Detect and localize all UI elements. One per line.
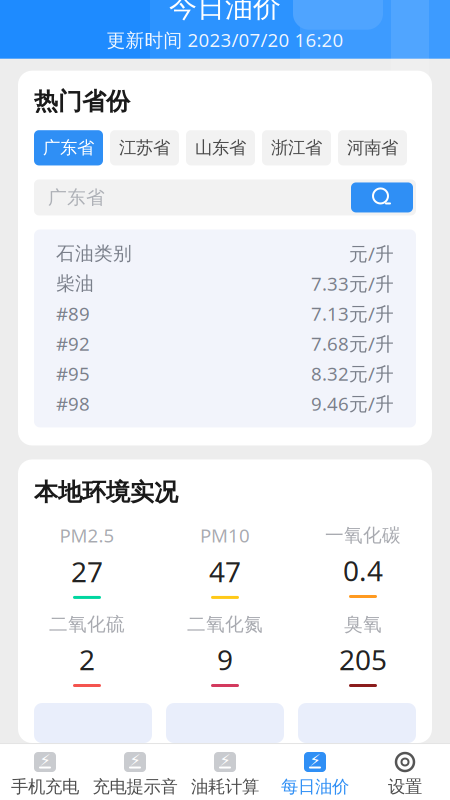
staticText: #89 xyxy=(56,301,90,326)
staticText: 8.32元/升 xyxy=(311,361,394,386)
button[interactable]: 河南省 xyxy=(338,130,407,165)
button[interactable]: 浙江省 xyxy=(262,130,331,165)
button[interactable]: 江苏省 xyxy=(110,130,179,165)
staticText: 9 xyxy=(217,641,233,678)
button[interactable]: 搜索 xyxy=(351,182,413,212)
staticText: 臭氧 xyxy=(344,613,382,636)
staticText: 47 xyxy=(209,553,241,590)
staticText: ⚡︎ xyxy=(129,751,140,770)
staticText: 205 xyxy=(339,641,387,678)
staticText: 山东省 xyxy=(195,137,246,158)
staticText: 河南省 xyxy=(347,137,398,158)
staticText: 设置 xyxy=(388,776,422,797)
staticText: #92 xyxy=(56,331,90,356)
button[interactable]: ⚡︎ xyxy=(90,752,180,797)
staticText: 7.68元/升 xyxy=(311,331,394,356)
staticText: 手机充电 xyxy=(11,776,79,797)
staticText: 2 xyxy=(79,641,95,678)
staticText: 本地环境实况 xyxy=(34,477,178,507)
staticText: ⚡︎ xyxy=(39,751,50,770)
button[interactable]: 山东省 xyxy=(186,130,255,165)
staticText: 石油类别 xyxy=(56,242,132,265)
staticText: ⚡︎ xyxy=(219,751,230,770)
staticText: #95 xyxy=(56,361,90,386)
staticText: 二氧化硫 xyxy=(49,613,125,636)
staticText: 元/升 xyxy=(349,241,394,266)
button[interactable]: 设置 xyxy=(360,752,450,797)
staticText: 油耗计算 xyxy=(191,776,259,797)
staticText: 每日油价 xyxy=(281,776,349,797)
staticText: 热门省份 xyxy=(34,87,130,116)
staticText: 今日油价 xyxy=(169,0,281,24)
staticText: 27 xyxy=(71,553,103,590)
button[interactable]: ⚡︎ xyxy=(0,752,90,797)
staticText: PM10 xyxy=(200,523,250,548)
staticText: 浙江省 xyxy=(271,137,322,158)
staticText: #98 xyxy=(56,391,90,416)
staticText: 一氧化碳 xyxy=(325,524,401,547)
staticText: 7.33元/升 xyxy=(311,271,394,296)
button[interactable]: ⚡︎ xyxy=(270,752,360,797)
staticText: 7.13元/升 xyxy=(311,301,394,326)
staticText: 0.4 xyxy=(343,552,383,589)
staticText: 江苏省 xyxy=(119,137,170,158)
staticText: 广东省 xyxy=(48,186,105,209)
staticText: 充电提示音 xyxy=(92,776,177,797)
staticText: 更新时间 2023/07/20 16:20 xyxy=(106,27,343,52)
staticText: 柴油 xyxy=(56,272,94,295)
staticText: 广东省 xyxy=(43,137,94,158)
staticText: ⚡︎ xyxy=(309,751,320,770)
button[interactable]: ⚡︎ xyxy=(180,752,270,797)
button[interactable]: 广东省 xyxy=(34,130,103,165)
staticText: 二氧化氮 xyxy=(187,613,263,636)
staticText: PM2.5 xyxy=(59,523,114,548)
staticText: 9.46元/升 xyxy=(311,391,394,416)
